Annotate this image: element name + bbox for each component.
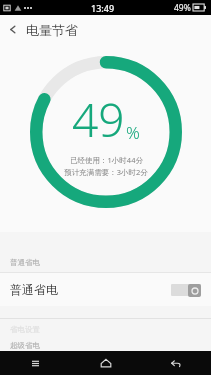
button[interactable]: Home (71, 351, 141, 375)
staticText: 已经使用：1小时44分 (70, 155, 143, 165)
button[interactable]: 普通省电 (0, 273, 211, 306)
staticText: 普通省电 (10, 282, 58, 297)
staticText: 13:49 (91, 2, 115, 14)
button[interactable]: Back (0, 15, 211, 44)
button[interactable]: Back (141, 351, 211, 375)
button[interactable]: Menu (0, 351, 71, 375)
staticText: 预计充满需要：3小时2分 (64, 167, 148, 177)
staticText: 电量节省 (26, 22, 78, 38)
staticText: 超级省电 (10, 341, 40, 350)
staticText: % (126, 121, 140, 144)
staticText: 普通省电 (10, 258, 40, 267)
staticText: 49% (174, 2, 191, 14)
staticText: 省电设置 (10, 325, 40, 334)
button[interactable]: Toggle power saving (171, 283, 201, 297)
staticText: 49 (72, 88, 125, 151)
